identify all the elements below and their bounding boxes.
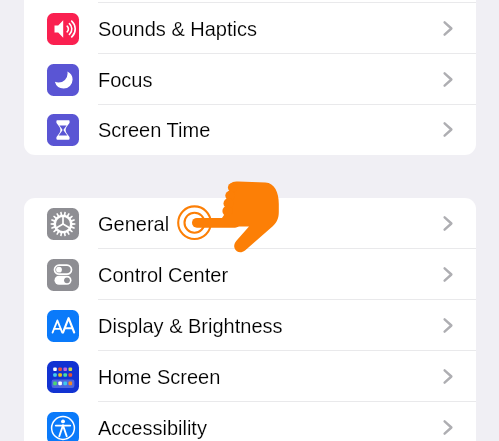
button[interactable]: Control Center [24,249,476,300]
button[interactable]: Notifications [24,0,476,3]
staticText: General [98,213,170,235]
staticText: Focus [98,69,153,91]
button[interactable]: General [24,198,476,249]
button[interactable]: Screen Time [24,105,476,155]
staticText: Sounds & Haptics [98,18,257,40]
other: Tap General [175,178,287,260]
button[interactable]: Focus [24,54,476,105]
staticText: Home Screen [98,366,221,388]
button[interactable]: Display & Brightness [24,300,476,351]
button[interactable]: Home Screen [24,351,476,402]
staticText: Screen Time [98,119,211,141]
staticText: Control Center [98,264,229,286]
staticText: Display & Brightness [98,315,283,337]
button[interactable]: Sounds & Haptics [24,3,476,54]
button[interactable]: Accessibility [24,402,476,441]
staticText: Accessibility [98,417,207,439]
